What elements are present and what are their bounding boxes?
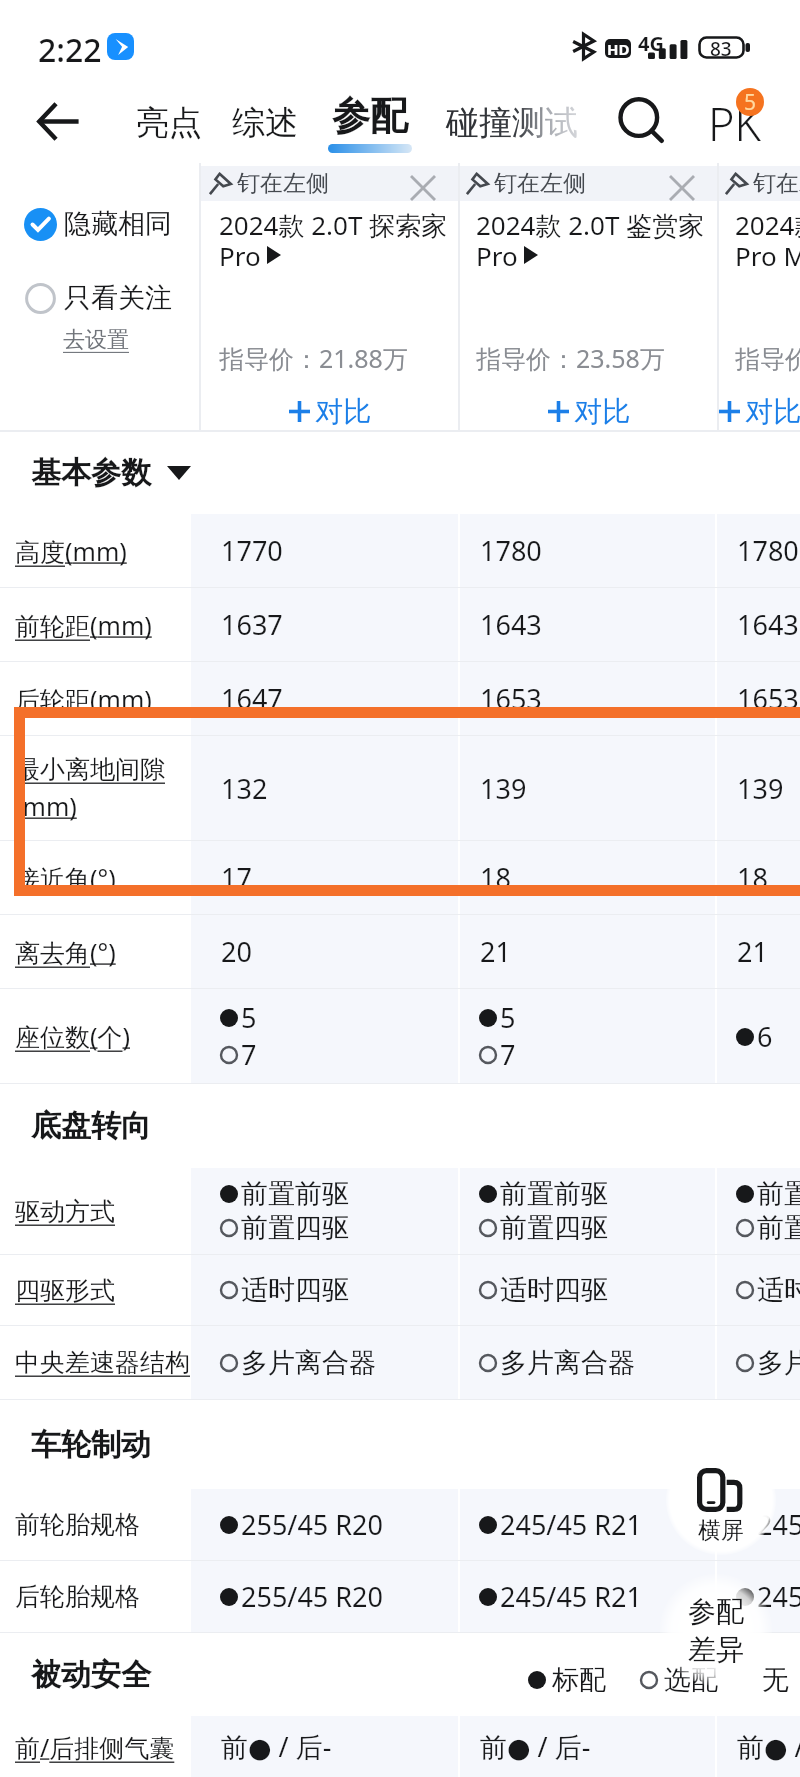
staticText: 底盘转向 — [31, 1107, 151, 1145]
staticText: 2024款 2.0T 探索家 — [219, 207, 448, 243]
staticText: 1647 — [221, 680, 283, 717]
staticText: 指导价：21.88万 — [219, 341, 408, 375]
staticText: 245/45 R21 — [500, 1578, 642, 1615]
staticText: 多片离合器 — [500, 1346, 635, 1380]
staticText: 座位数(个) — [15, 1019, 131, 1053]
staticText: 前/后排侧气囊 — [15, 1730, 175, 1764]
button[interactable]: 参配 — [660, 1574, 772, 1686]
staticText: 参配 — [688, 1594, 744, 1629]
staticText: 255/45 R20 — [241, 1506, 383, 1543]
staticText: 离去角(°) — [15, 935, 116, 969]
button[interactable]: 亮点 — [136, 82, 202, 163]
staticText: 前置四驱 — [757, 1211, 800, 1245]
staticText: 2:22 — [38, 28, 102, 72]
staticText: 5 — [500, 999, 516, 1036]
staticText: 132 — [221, 770, 268, 807]
staticText: Pro — [476, 238, 518, 272]
staticText: PK — [708, 93, 761, 154]
button[interactable]: 参配 — [328, 82, 412, 163]
staticText: 接近角(°) — [15, 861, 116, 895]
button[interactable]: 碰撞测试 — [446, 82, 578, 163]
staticText: 亮点 — [136, 102, 202, 144]
staticText: 四驱形式 — [15, 1275, 115, 1306]
button[interactable]: 综述 — [232, 82, 298, 163]
staticText: 高度(mm) — [15, 534, 127, 568]
staticText: 差异 — [688, 1632, 744, 1667]
button[interactable]: Back — [24, 87, 92, 155]
staticText: 5 — [744, 88, 757, 116]
staticText: 前置四驱 — [241, 1211, 349, 1245]
staticText: 1637 — [221, 606, 283, 643]
staticText: 21 — [737, 933, 768, 970]
staticText: 无 — [762, 1663, 789, 1697]
staticText: 后轮距(mm) — [15, 682, 152, 716]
staticText: 对比 — [315, 394, 371, 429]
staticText: 适时四驱 — [757, 1273, 800, 1307]
staticText: 选配 — [664, 1663, 718, 1697]
staticText: 隐藏相同 — [64, 207, 172, 241]
button[interactable]: 对比 — [199, 385, 458, 437]
staticText: 1653 — [737, 680, 799, 717]
button[interactable]: 被动安全 — [31, 1656, 151, 1694]
staticText: Pro M — [735, 238, 800, 272]
staticText: 前轮距(mm) — [15, 608, 152, 642]
staticText: 后轮胎规格 — [15, 1581, 140, 1612]
staticText: 83 — [710, 36, 732, 59]
staticText: 多片离合器 — [241, 1346, 376, 1380]
staticText: 21 — [480, 933, 511, 970]
staticText: 7 — [500, 1036, 516, 1073]
staticText: 前置前驱 — [500, 1177, 608, 1211]
staticText: 多片离合器 — [757, 1346, 800, 1380]
staticText: 前● / 后- — [221, 1728, 332, 1765]
button[interactable]: Switch to landscape — [666, 1445, 776, 1555]
button[interactable]: 底盘转向 — [31, 1107, 151, 1145]
staticText: 指导价：23.58万 — [476, 341, 665, 375]
staticText: HD — [607, 39, 630, 58]
staticText: 驱动方式 — [15, 1196, 115, 1227]
button[interactable]: 车轮制动 — [31, 1426, 151, 1464]
staticText: 前轮胎规格 — [15, 1509, 140, 1540]
staticText: 前● / 后- — [737, 1728, 800, 1765]
staticText: 标配 — [552, 1663, 606, 1697]
button[interactable]: Search — [608, 88, 674, 154]
staticText: 17 — [221, 859, 252, 896]
staticText: 钉在左侧 — [753, 169, 800, 198]
button[interactable]: PK compare — [700, 82, 772, 163]
button[interactable]: 钉在左侧 — [458, 166, 717, 201]
staticText: (mm) — [15, 789, 77, 823]
staticText: 2024款 2.0T 鉴赏家 — [735, 207, 800, 243]
staticText: 中央差速器结构 — [15, 1347, 190, 1378]
staticText: 基本参数 — [31, 454, 151, 492]
button[interactable]: 对比 — [717, 385, 800, 437]
button[interactable]: Remove car — [404, 169, 442, 207]
staticText: 钉在左侧 — [494, 169, 586, 198]
staticText: 车轮制动 — [31, 1426, 151, 1464]
staticText: 1653 — [480, 680, 542, 717]
staticText: 对比 — [745, 394, 800, 429]
staticText: 去设置 — [63, 326, 129, 354]
staticText: 6 — [757, 1018, 773, 1055]
button[interactable]: 基本参数 — [31, 454, 191, 492]
button[interactable]: Remove car — [663, 169, 701, 207]
staticText: 只看关注 — [64, 281, 172, 315]
staticText: 前置前驱 — [757, 1177, 800, 1211]
button[interactable]: 去设置 — [63, 326, 129, 354]
staticText: 适时四驱 — [241, 1273, 349, 1307]
staticText: Pro — [219, 238, 261, 272]
button[interactable]: 钉在左侧 — [199, 166, 458, 201]
staticText: 245/45 R21 — [500, 1506, 642, 1543]
staticText: 245/45 R21 — [757, 1506, 800, 1543]
button[interactable]: 钉在左侧 — [717, 166, 800, 201]
staticText: 前置四驱 — [500, 1211, 608, 1245]
staticText: 1643 — [480, 606, 542, 643]
staticText: 1780 — [737, 532, 799, 569]
staticText: 2024款 2.0T 鉴赏家 — [476, 207, 705, 243]
staticText: 前置前驱 — [241, 1177, 349, 1211]
button[interactable]: 对比 — [458, 385, 717, 437]
button[interactable]: 只看关注 — [25, 281, 172, 315]
staticText: 钉在左侧 — [237, 169, 329, 198]
staticText: 1780 — [480, 532, 542, 569]
staticText: 18 — [737, 859, 768, 896]
staticText: 139 — [480, 770, 527, 807]
button[interactable]: 隐藏相同 — [24, 207, 172, 241]
